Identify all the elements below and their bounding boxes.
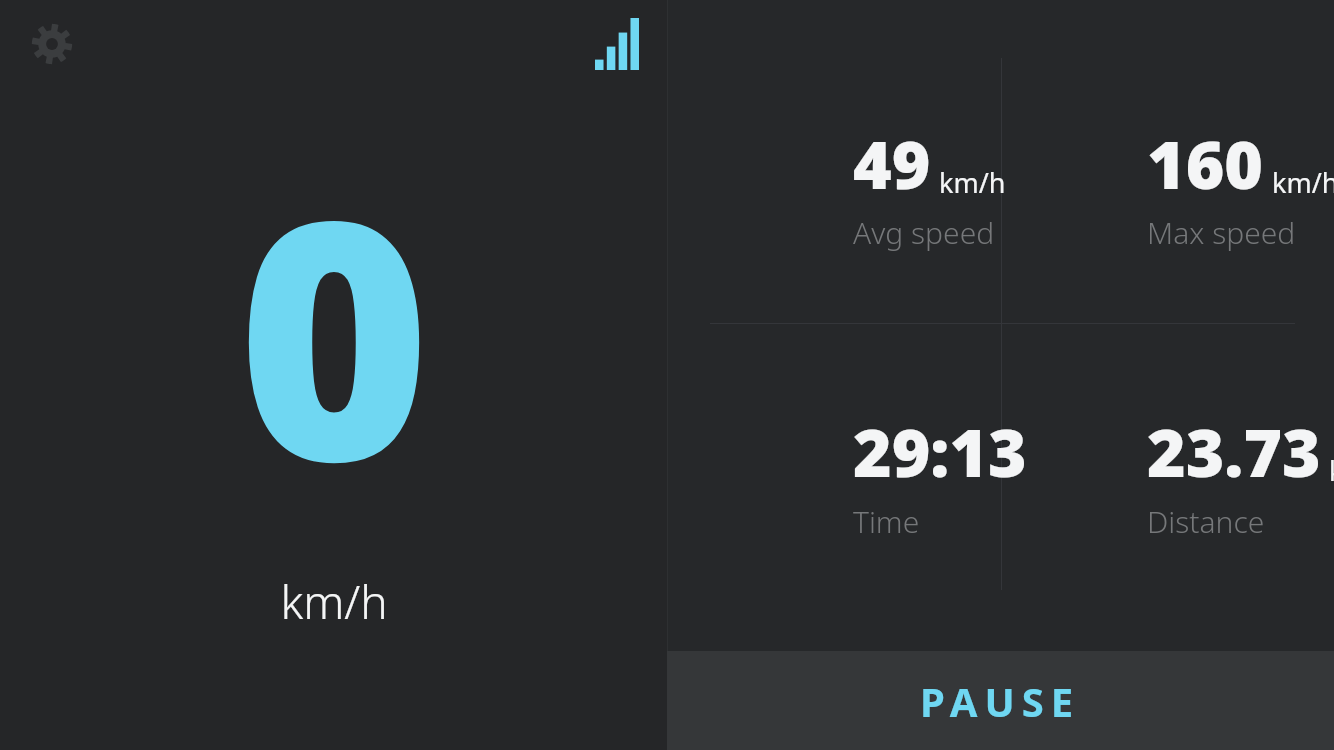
button[interactable]: 49 xyxy=(667,0,1001,323)
staticText: km/h xyxy=(280,570,388,633)
staticText: Max speed xyxy=(1147,212,1296,253)
staticText: 29:13 xyxy=(853,406,1027,496)
staticText: Distance xyxy=(1147,501,1265,542)
staticText: PAUSE xyxy=(920,674,1081,728)
staticText: 0 xyxy=(237,107,431,556)
staticText: 49 xyxy=(853,118,931,208)
staticText: km/h xyxy=(939,164,1006,201)
button[interactable]: 160 xyxy=(1001,0,1334,323)
button[interactable]: GPS signal xyxy=(595,18,639,70)
staticText: 23.73 xyxy=(1147,406,1321,496)
staticText: Time xyxy=(853,501,920,542)
button[interactable]: 29:13 xyxy=(667,323,1001,651)
staticText: Avg speed xyxy=(853,212,995,253)
staticText: 160 xyxy=(1147,118,1264,208)
button[interactable]: 23.73 xyxy=(1001,323,1334,651)
staticText: km xyxy=(1329,452,1334,489)
staticText: km/h xyxy=(1272,164,1334,201)
button[interactable]: PAUSE xyxy=(667,651,1334,750)
button[interactable]: Settings xyxy=(24,16,80,72)
